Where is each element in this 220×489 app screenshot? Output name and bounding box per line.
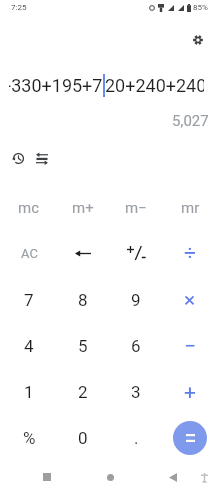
button[interactable] xyxy=(57,231,109,275)
staticText: . xyxy=(134,428,139,448)
button[interactable]: Unit converter xyxy=(30,146,54,170)
button[interactable]: History xyxy=(6,146,30,170)
button[interactable]: + xyxy=(164,370,216,414)
staticText: 85% xyxy=(193,3,208,12)
staticText: ÷ xyxy=(184,241,196,266)
button[interactable]: m− xyxy=(110,186,162,230)
staticText: 6 xyxy=(131,336,141,356)
button[interactable]: mc xyxy=(3,186,55,230)
staticText: × xyxy=(184,288,196,313)
button[interactable]: Home xyxy=(93,466,127,488)
button[interactable]: 9 xyxy=(110,278,162,322)
button[interactable]: . xyxy=(110,416,162,460)
staticText: 20+240+240 xyxy=(105,75,204,96)
button[interactable] xyxy=(164,416,216,460)
staticText: 0 xyxy=(78,428,88,448)
button[interactable]: Settings xyxy=(186,28,210,52)
button[interactable]: 7 xyxy=(3,278,55,322)
button[interactable]: 1 xyxy=(3,370,55,414)
staticText: m+ xyxy=(72,199,94,217)
staticText: 7:25 xyxy=(11,3,27,12)
button[interactable]: m+ xyxy=(57,186,109,230)
staticText: m− xyxy=(125,199,147,217)
button[interactable]: AC xyxy=(3,231,55,275)
staticText: + xyxy=(184,380,196,405)
button[interactable]: ÷ xyxy=(164,231,216,275)
button[interactable]: Back xyxy=(156,466,190,488)
button[interactable]: × xyxy=(164,278,216,322)
button[interactable]: 5 xyxy=(57,324,109,368)
staticText: mr xyxy=(181,199,200,217)
button[interactable]: 6 xyxy=(110,324,162,368)
button[interactable]: 3 xyxy=(110,370,162,414)
staticText: 4 xyxy=(24,336,34,356)
button[interactable]: − xyxy=(164,324,216,368)
button[interactable]: 2 xyxy=(57,370,109,414)
staticText: AC xyxy=(21,246,38,261)
staticText: 5 xyxy=(78,336,88,356)
staticText: 5,027 xyxy=(172,112,209,128)
staticText: 7 xyxy=(24,290,34,310)
staticText: 3 xyxy=(131,382,141,402)
staticText: +330+195+7 xyxy=(9,75,103,96)
staticText: mc xyxy=(18,199,40,217)
button[interactable]: mr xyxy=(164,186,216,230)
staticText: 2 xyxy=(78,382,88,402)
button[interactable]: Keyboard xyxy=(192,466,216,488)
button[interactable]: % xyxy=(3,416,55,460)
button[interactable]: 4 xyxy=(3,324,55,368)
staticText: 9 xyxy=(131,290,141,310)
staticText: % xyxy=(23,428,36,448)
button[interactable]: Recents xyxy=(30,466,64,488)
staticText: − xyxy=(184,334,197,359)
button[interactable]: 0 xyxy=(57,416,109,460)
button[interactable] xyxy=(110,231,162,275)
staticText: 1 xyxy=(24,382,34,402)
button[interactable]: 8 xyxy=(57,278,109,322)
staticText: 8 xyxy=(78,290,88,310)
